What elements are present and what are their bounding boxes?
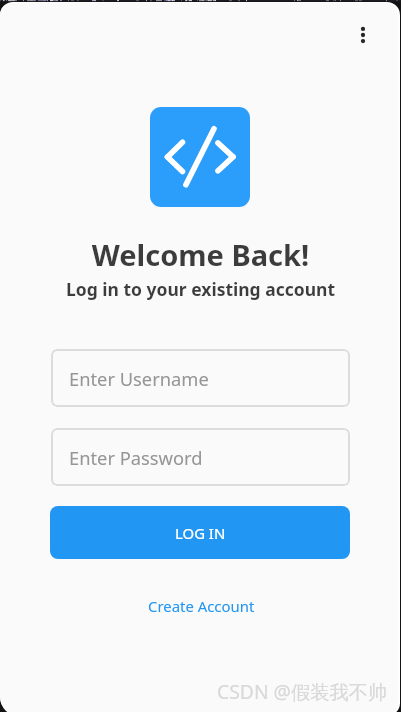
staticText: Create Account [148, 596, 255, 616]
button[interactable]: Create Account [141, 591, 262, 621]
button[interactable]: LOG IN [50, 506, 350, 559]
staticText: LOG IN [175, 523, 226, 543]
staticText: Welcome Back! [0, 235, 401, 274]
staticText: Log in to your existing account [0, 277, 401, 301]
staticText: CSDN @假装我不帅 [217, 678, 388, 704]
button[interactable]: Enter Password [51, 428, 350, 486]
button[interactable]: More options [341, 13, 385, 57]
button[interactable]: Enter Username [51, 349, 350, 407]
staticText: Enter Username [69, 366, 209, 391]
staticText: Enter Password [69, 445, 203, 470]
